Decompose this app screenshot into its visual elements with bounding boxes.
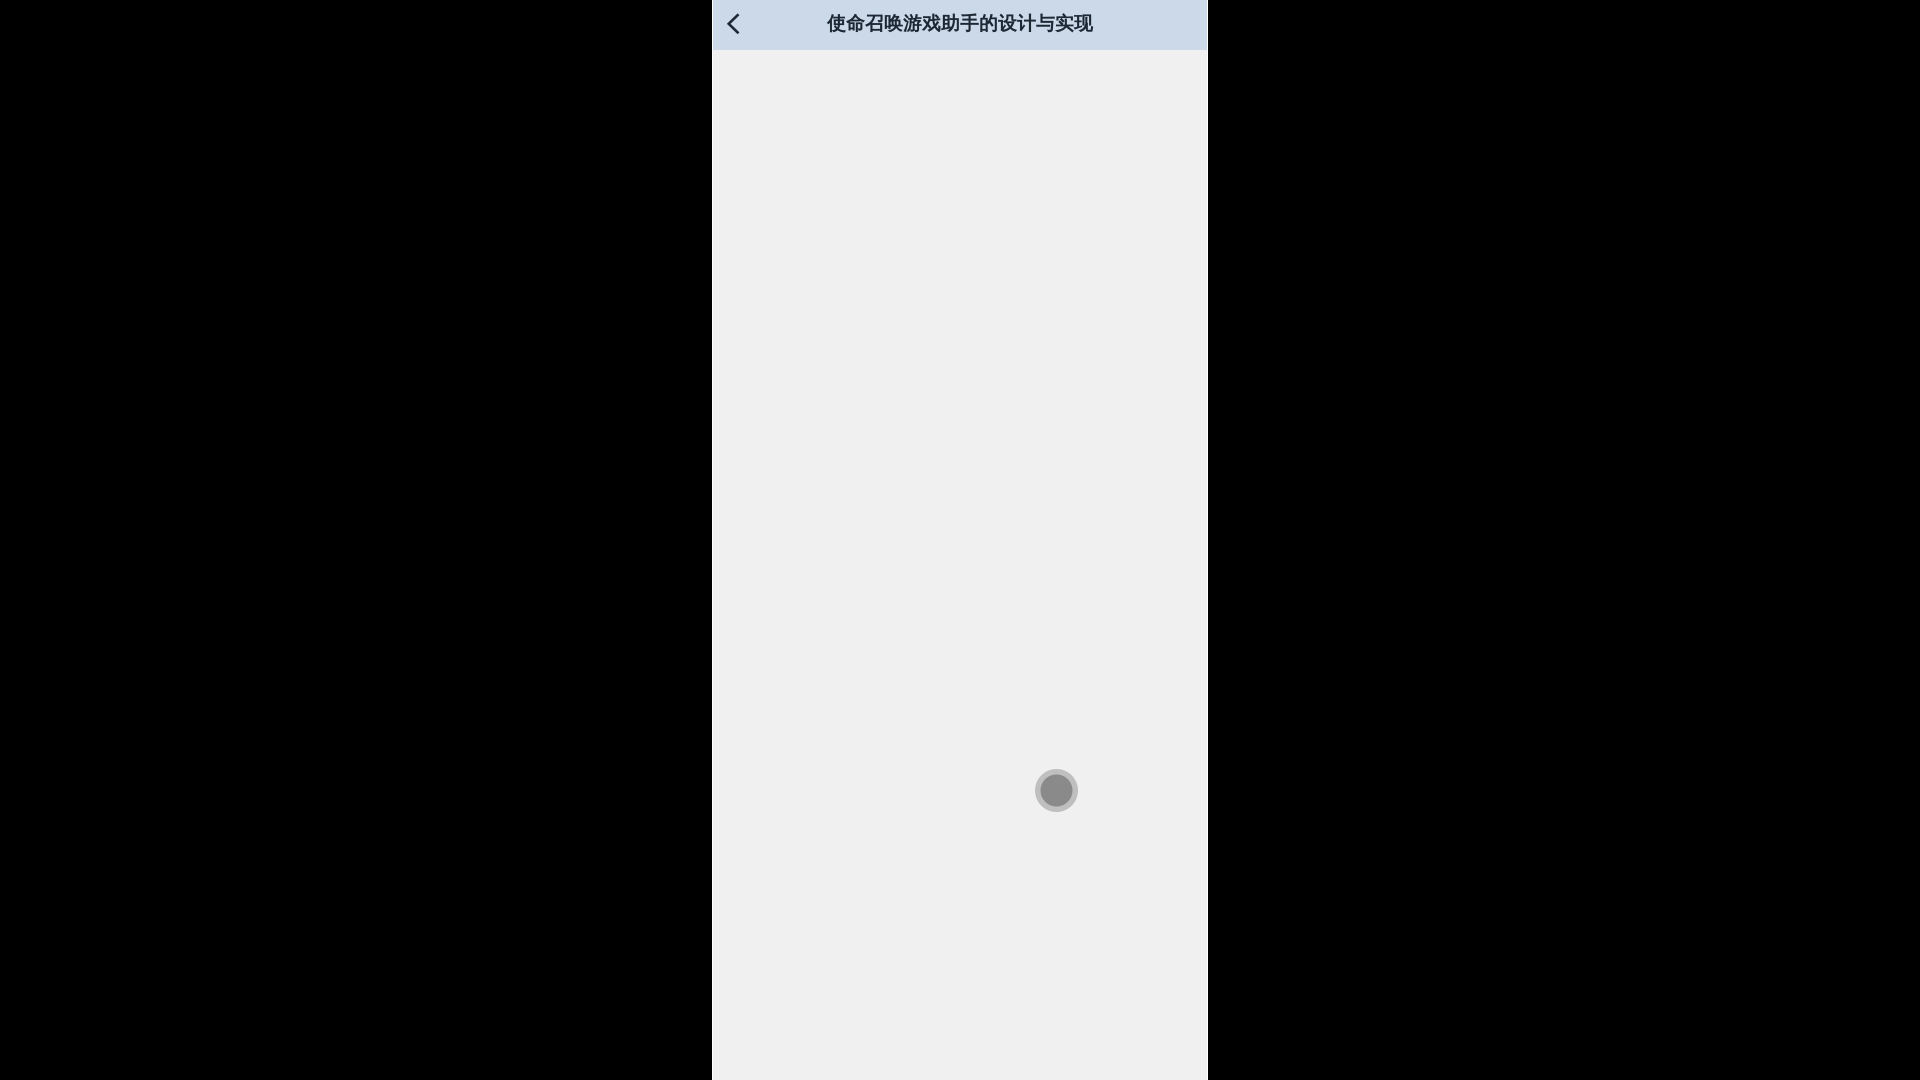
staticText: 使命召唤游戏助手的设计与实现 (827, 12, 1093, 35)
button[interactable]: Back (713, 0, 754, 50)
